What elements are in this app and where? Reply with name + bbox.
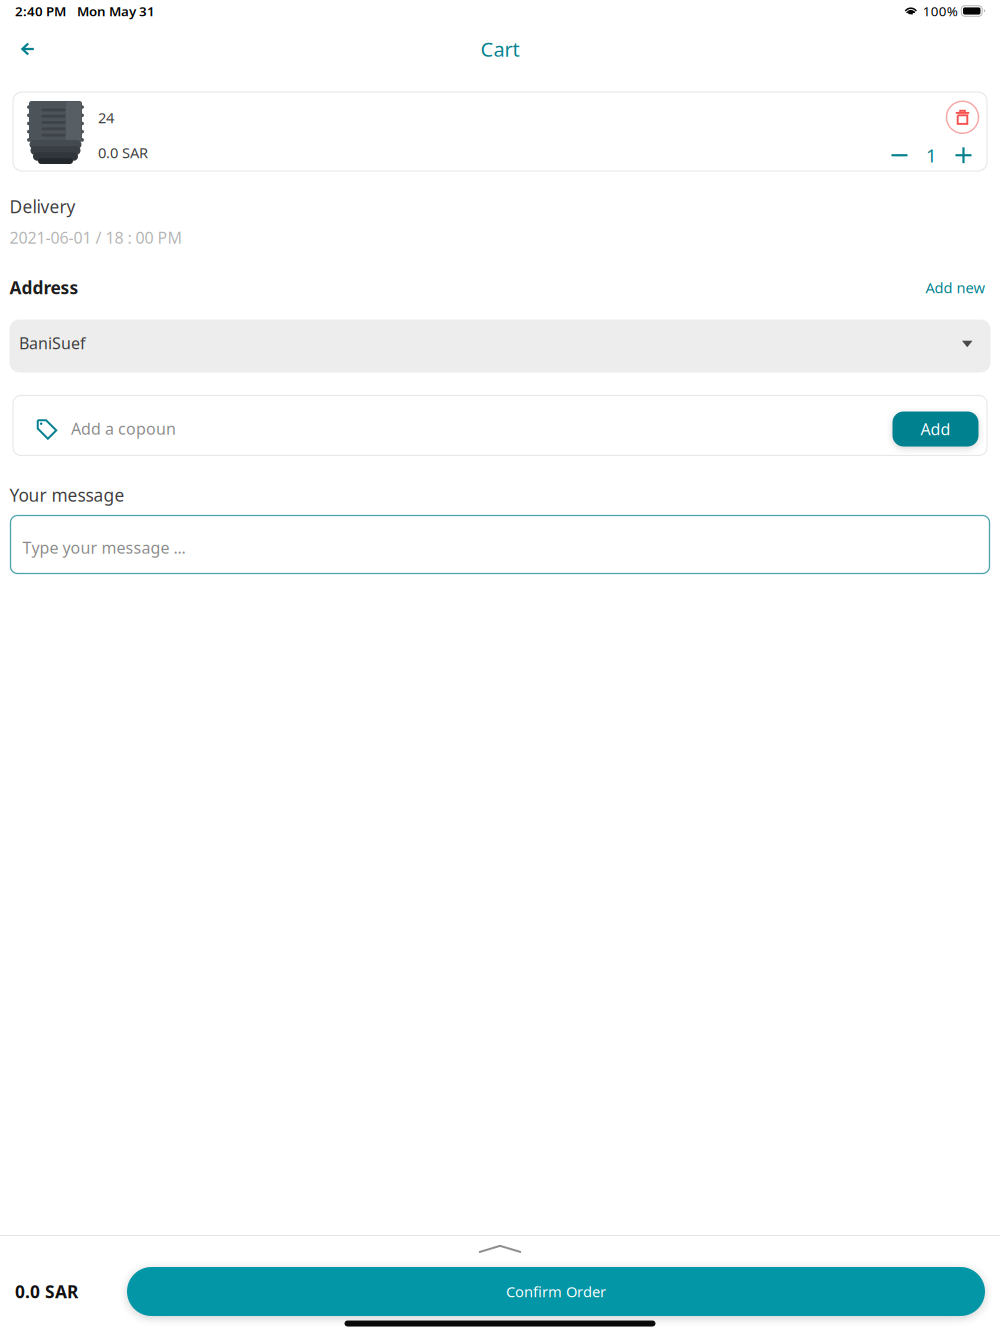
staticText: Add new — [925, 278, 985, 297]
staticText: 100% — [923, 2, 958, 20]
staticText: 0.0 SAR — [15, 1280, 78, 1303]
staticText: Add a copoun — [71, 418, 176, 439]
staticText: Cart — [480, 36, 519, 62]
button[interactable]: Back — [6, 35, 50, 79]
staticText: 24 — [98, 108, 114, 127]
staticText: Address — [9, 276, 78, 299]
button[interactable]: Confirm Order — [127, 1267, 985, 1316]
staticText: Add — [920, 418, 950, 440]
button[interactable]: Increase quantity — [948, 141, 978, 169]
staticText: Confirm Order — [506, 1282, 606, 1301]
staticText: BaniSuef — [19, 332, 86, 354]
button[interactable]: Add — [892, 408, 978, 443]
staticText: Delivery — [9, 195, 75, 218]
staticText: 2:40 PM — [15, 2, 66, 20]
staticText: 0.0 SAR — [98, 143, 148, 162]
button[interactable]: Remove item — [946, 101, 978, 133]
staticText: 1 — [926, 143, 937, 168]
staticText: Type your message ... — [22, 537, 185, 558]
button[interactable]: Decrease quantity — [884, 141, 914, 169]
button[interactable]: Add new — [920, 269, 990, 306]
staticText: Your message — [9, 483, 124, 506]
staticText: Mon May 31 — [77, 2, 155, 20]
staticText: 2021-06-01 / 18 : 00 PM — [9, 227, 182, 248]
